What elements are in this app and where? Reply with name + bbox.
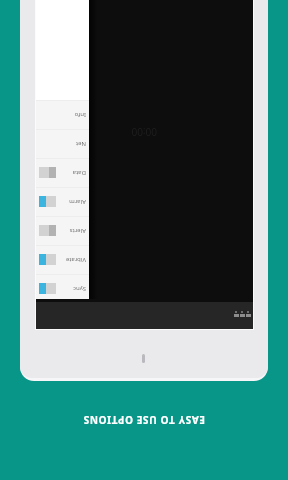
button[interactable]: Toggle Alerts <box>39 225 56 236</box>
button[interactable]: Info <box>36 100 89 129</box>
staticText: EASY TO USE OPTIONS <box>83 413 205 427</box>
staticText: Net <box>39 140 86 148</box>
button[interactable]: Toggle Sync <box>39 283 56 294</box>
button[interactable]: Toggle Data <box>39 167 56 178</box>
staticText: Vibrate <box>56 256 86 264</box>
staticText: Alarm <box>56 198 86 206</box>
button[interactable]: Sync <box>36 274 89 299</box>
button[interactable]: Vibrate <box>36 245 89 274</box>
button[interactable]: Alarm <box>36 187 89 216</box>
staticText: Info <box>39 111 86 119</box>
staticText: Alerts <box>56 227 86 235</box>
button[interactable]: Net <box>36 129 89 158</box>
button[interactable]: Toggle Vibrate <box>39 254 56 265</box>
staticText: 00:00 <box>131 125 157 139</box>
button[interactable]: Toggle Alarm <box>39 196 56 207</box>
staticText: Sync <box>56 285 86 293</box>
staticText: Data <box>56 169 86 177</box>
button[interactable]: Data <box>36 158 89 187</box>
button[interactable]: Alerts <box>36 216 89 245</box>
